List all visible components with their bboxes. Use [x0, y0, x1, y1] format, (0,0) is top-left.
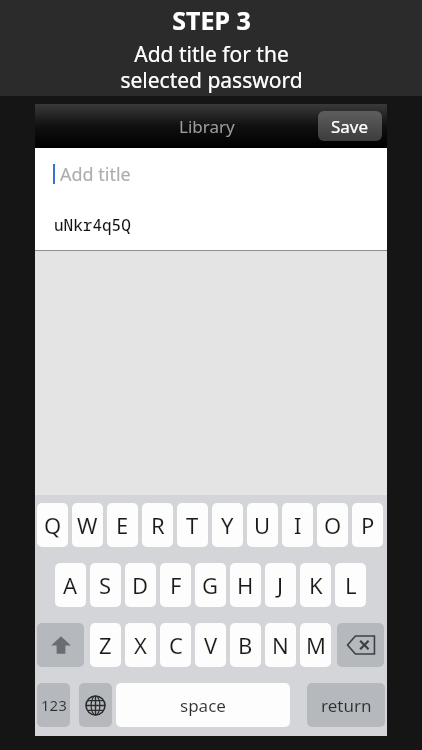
staticText: 123 — [41, 695, 67, 715]
staticText: T — [186, 510, 199, 540]
staticText: return — [321, 694, 372, 717]
button[interactable]: return — [307, 683, 385, 727]
staticText: N — [272, 630, 289, 660]
button[interactable]: O — [317, 503, 348, 547]
staticText: Z — [99, 630, 112, 660]
staticText: K — [309, 570, 323, 600]
staticText: L — [345, 570, 357, 600]
staticText: A — [63, 570, 78, 600]
button[interactable]: P — [352, 503, 383, 547]
staticText: H — [237, 570, 254, 600]
staticText: Y — [221, 510, 234, 540]
button[interactable]: L — [335, 563, 366, 607]
staticText: B — [238, 630, 253, 660]
staticText: Save — [331, 115, 369, 138]
button[interactable]: T — [177, 503, 208, 547]
button[interactable]: A — [55, 563, 86, 607]
button[interactable]: W — [72, 503, 103, 547]
button[interactable]: U — [247, 503, 278, 547]
staticText: Add title for the selected password — [120, 40, 303, 94]
button[interactable]: Q — [37, 503, 68, 547]
button[interactable]: K — [300, 563, 331, 607]
button[interactable]: C — [160, 623, 191, 667]
button[interactable]: Delete — [337, 623, 384, 667]
button[interactable]: space — [116, 683, 290, 727]
button[interactable]: M — [300, 623, 331, 667]
staticText: R — [151, 510, 165, 540]
button[interactable]: B — [230, 623, 261, 667]
staticText: M — [306, 630, 326, 660]
button[interactable]: Next keyboard — [79, 683, 112, 727]
staticText: D — [132, 570, 149, 600]
button[interactable]: X — [125, 623, 156, 667]
button[interactable]: Add title — [35, 148, 387, 251]
staticText: X — [134, 630, 147, 660]
staticText: Add title — [60, 162, 131, 187]
staticText: J — [277, 570, 284, 600]
staticText: W — [77, 510, 98, 540]
button[interactable]: F — [160, 563, 191, 607]
button[interactable]: V — [195, 623, 226, 667]
staticText: E — [116, 510, 129, 540]
button[interactable]: Save — [318, 111, 382, 141]
staticText: uNkr4q5Q — [54, 214, 131, 236]
button[interactable]: G — [195, 563, 226, 607]
button[interactable]: Z — [90, 623, 121, 667]
button[interactable]: R — [142, 503, 173, 547]
staticText: G — [202, 570, 219, 600]
button[interactable]: Shift — [37, 623, 84, 667]
button[interactable]: D — [125, 563, 156, 607]
staticText: S — [99, 570, 112, 600]
button[interactable]: I — [282, 503, 313, 547]
staticText: C — [169, 630, 183, 660]
staticText: I — [294, 510, 302, 540]
button[interactable]: Y — [212, 503, 243, 547]
staticText: O — [324, 510, 342, 540]
button[interactable]: S — [90, 563, 121, 607]
staticText: V — [204, 630, 218, 660]
button[interactable]: H — [230, 563, 261, 607]
button[interactable]: 123 — [37, 683, 70, 727]
button[interactable]: J — [265, 563, 296, 607]
staticText: Library — [179, 115, 235, 138]
staticText: STEP 3 — [172, 3, 251, 37]
staticText: U — [254, 510, 271, 540]
staticText: F — [170, 570, 182, 600]
staticText: Q — [44, 510, 62, 540]
button[interactable]: E — [107, 503, 138, 547]
staticText: P — [361, 510, 375, 540]
staticText: space — [180, 694, 226, 717]
button[interactable]: N — [265, 623, 296, 667]
